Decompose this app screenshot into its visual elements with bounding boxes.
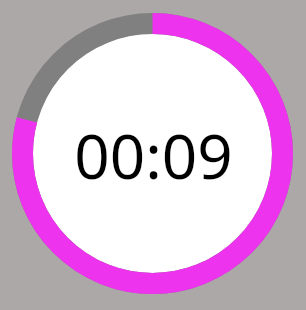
staticText: 00:09 xyxy=(74,113,233,197)
button[interactable]: Timer, 00:09 remaining xyxy=(0,0,306,310)
